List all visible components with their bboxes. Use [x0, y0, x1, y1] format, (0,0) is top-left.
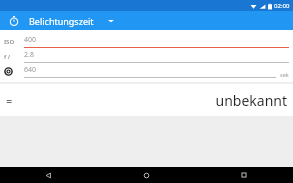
button[interactable]: Belichtungszeit [27, 13, 116, 29]
staticText: = [6, 93, 13, 108]
staticText: 02:00 [274, 2, 290, 10]
button[interactable]: Timer [6, 13, 22, 29]
staticText: unbekannt [215, 91, 287, 110]
button[interactable]: ISO [0, 34, 293, 49]
staticText: 640 [24, 65, 37, 75]
button[interactable]: = [0, 84, 293, 116]
button[interactable]: Back [0, 167, 97, 183]
staticText: 2.8 [24, 50, 34, 60]
staticText: Belichtungszeit [29, 15, 94, 27]
staticText: ISO [4, 38, 15, 46]
button[interactable]: f / [0, 49, 293, 64]
staticText: sek [280, 71, 289, 78]
button[interactable]: 640 [0, 64, 293, 79]
button[interactable]: Recent apps [195, 167, 293, 183]
staticText: 400 [24, 35, 37, 45]
button[interactable]: Home [97, 167, 195, 183]
staticText: f / [4, 53, 11, 61]
